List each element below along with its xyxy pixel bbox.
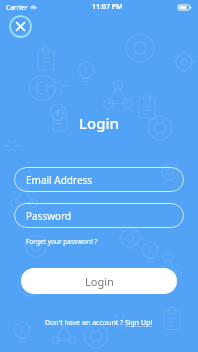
staticText: 11:07 PM	[92, 2, 123, 12]
staticText: Email Address	[26, 173, 93, 187]
button[interactable]: Don't have an account ? Sign Up!	[43, 316, 155, 330]
staticText: Forget your password ?	[26, 237, 98, 246]
button[interactable]: Login	[21, 268, 177, 294]
button[interactable]: Email Address	[14, 167, 184, 192]
staticText: Carrier	[6, 3, 28, 12]
staticText: Don't have an account ? Sign Up!	[45, 318, 153, 328]
button[interactable]: Password	[14, 203, 184, 228]
button[interactable]: Forget your password ?	[25, 235, 99, 248]
staticText: Password	[26, 209, 72, 223]
staticText: Login	[79, 113, 119, 133]
button[interactable]: Close	[9, 15, 32, 38]
staticText: Login	[85, 274, 114, 289]
